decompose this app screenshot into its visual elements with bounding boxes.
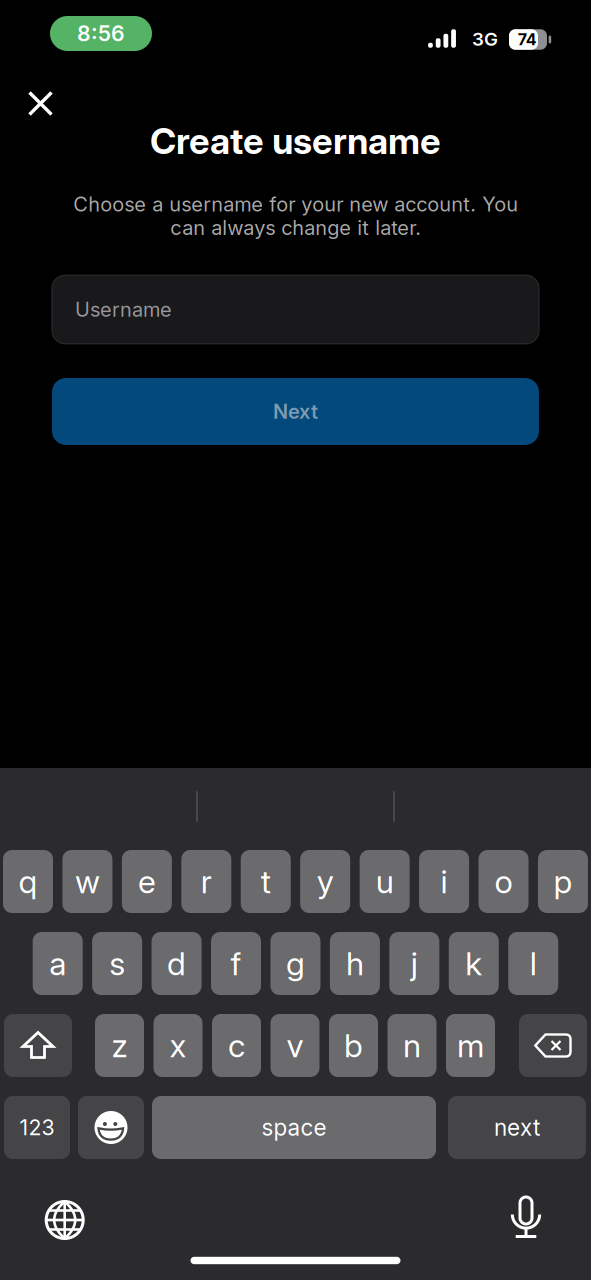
- staticText: l: [530, 945, 537, 982]
- button[interactable]: w: [62, 850, 112, 913]
- button[interactable]: 123: [4, 1096, 70, 1159]
- staticText: h: [346, 945, 364, 982]
- button[interactable]: [511, 1195, 541, 1239]
- staticText: b: [344, 1027, 363, 1064]
- staticText: a: [49, 945, 66, 982]
- button[interactable]: x: [153, 1014, 202, 1077]
- button[interactable]: m: [446, 1014, 495, 1077]
- button[interactable]: r: [181, 850, 231, 913]
- staticText: u: [376, 863, 394, 900]
- staticText: g: [286, 945, 305, 982]
- staticText: o: [494, 863, 512, 900]
- staticText: i: [441, 863, 448, 900]
- button[interactable]: Username: [52, 275, 539, 344]
- button[interactable]: j: [389, 932, 439, 995]
- staticText: 8:56: [77, 21, 125, 46]
- staticText: space: [261, 1114, 326, 1141]
- staticText: y: [317, 863, 334, 900]
- button[interactable]: k: [449, 932, 499, 995]
- staticText: e: [138, 863, 156, 900]
- staticText: Next: [273, 400, 318, 423]
- staticText: k: [465, 945, 482, 982]
- button[interactable]: y: [300, 850, 350, 913]
- button[interactable]: d: [152, 932, 202, 995]
- button[interactable]: b: [329, 1014, 378, 1077]
- button[interactable]: Next: [52, 378, 539, 445]
- button[interactable]: f: [211, 932, 261, 995]
- button[interactable]: o: [478, 850, 528, 913]
- button[interactable]: t: [241, 850, 291, 913]
- staticText: 123: [19, 1115, 54, 1140]
- button[interactable]: p: [538, 850, 588, 913]
- staticText: j: [411, 945, 418, 982]
- button[interactable]: [519, 1014, 587, 1077]
- staticText: w: [75, 863, 100, 900]
- button[interactable]: 8:56: [50, 16, 152, 51]
- staticText: v: [286, 1027, 303, 1064]
- staticText: n: [403, 1027, 421, 1064]
- staticText: r: [201, 863, 212, 900]
- staticText: next: [494, 1114, 540, 1141]
- button[interactable]: [4, 1014, 72, 1077]
- button[interactable]: n: [387, 1014, 436, 1077]
- staticText: 74: [518, 30, 537, 49]
- staticText: t: [261, 863, 271, 900]
- button[interactable]: l: [508, 932, 558, 995]
- staticText: s: [109, 945, 125, 982]
- button[interactable]: c: [212, 1014, 261, 1077]
- staticText: 3G: [472, 28, 498, 50]
- button[interactable]: s: [92, 932, 142, 995]
- button[interactable]: v: [270, 1014, 319, 1077]
- staticText: q: [18, 863, 37, 900]
- staticText: p: [553, 863, 572, 900]
- button[interactable]: next: [448, 1096, 586, 1159]
- button[interactable]: g: [270, 932, 320, 995]
- button[interactable]: [78, 1096, 144, 1159]
- staticText: f: [230, 945, 241, 982]
- staticText: m: [457, 1027, 484, 1064]
- button[interactable]: u: [360, 850, 410, 913]
- staticText: d: [167, 945, 186, 982]
- button[interactable]: space: [152, 1096, 436, 1159]
- button[interactable]: e: [122, 850, 172, 913]
- staticText: Username: [75, 298, 172, 321]
- button[interactable]: z: [95, 1014, 144, 1077]
- staticText: z: [111, 1027, 127, 1064]
- button[interactable]: [18, 81, 62, 125]
- staticText: x: [169, 1027, 186, 1064]
- staticText: Choose a username for your new account. …: [73, 192, 518, 240]
- button[interactable]: i: [419, 850, 469, 913]
- staticText: Create username: [150, 120, 441, 162]
- button[interactable]: [44, 1199, 86, 1241]
- button[interactable]: a: [33, 932, 83, 995]
- button[interactable]: h: [330, 932, 380, 995]
- staticText: c: [228, 1027, 245, 1064]
- button[interactable]: q: [3, 850, 53, 913]
